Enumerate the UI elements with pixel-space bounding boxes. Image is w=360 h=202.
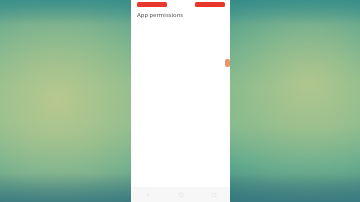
staticText: App permissions	[137, 11, 184, 19]
button[interactable]: App permissions	[131, 9, 230, 20]
